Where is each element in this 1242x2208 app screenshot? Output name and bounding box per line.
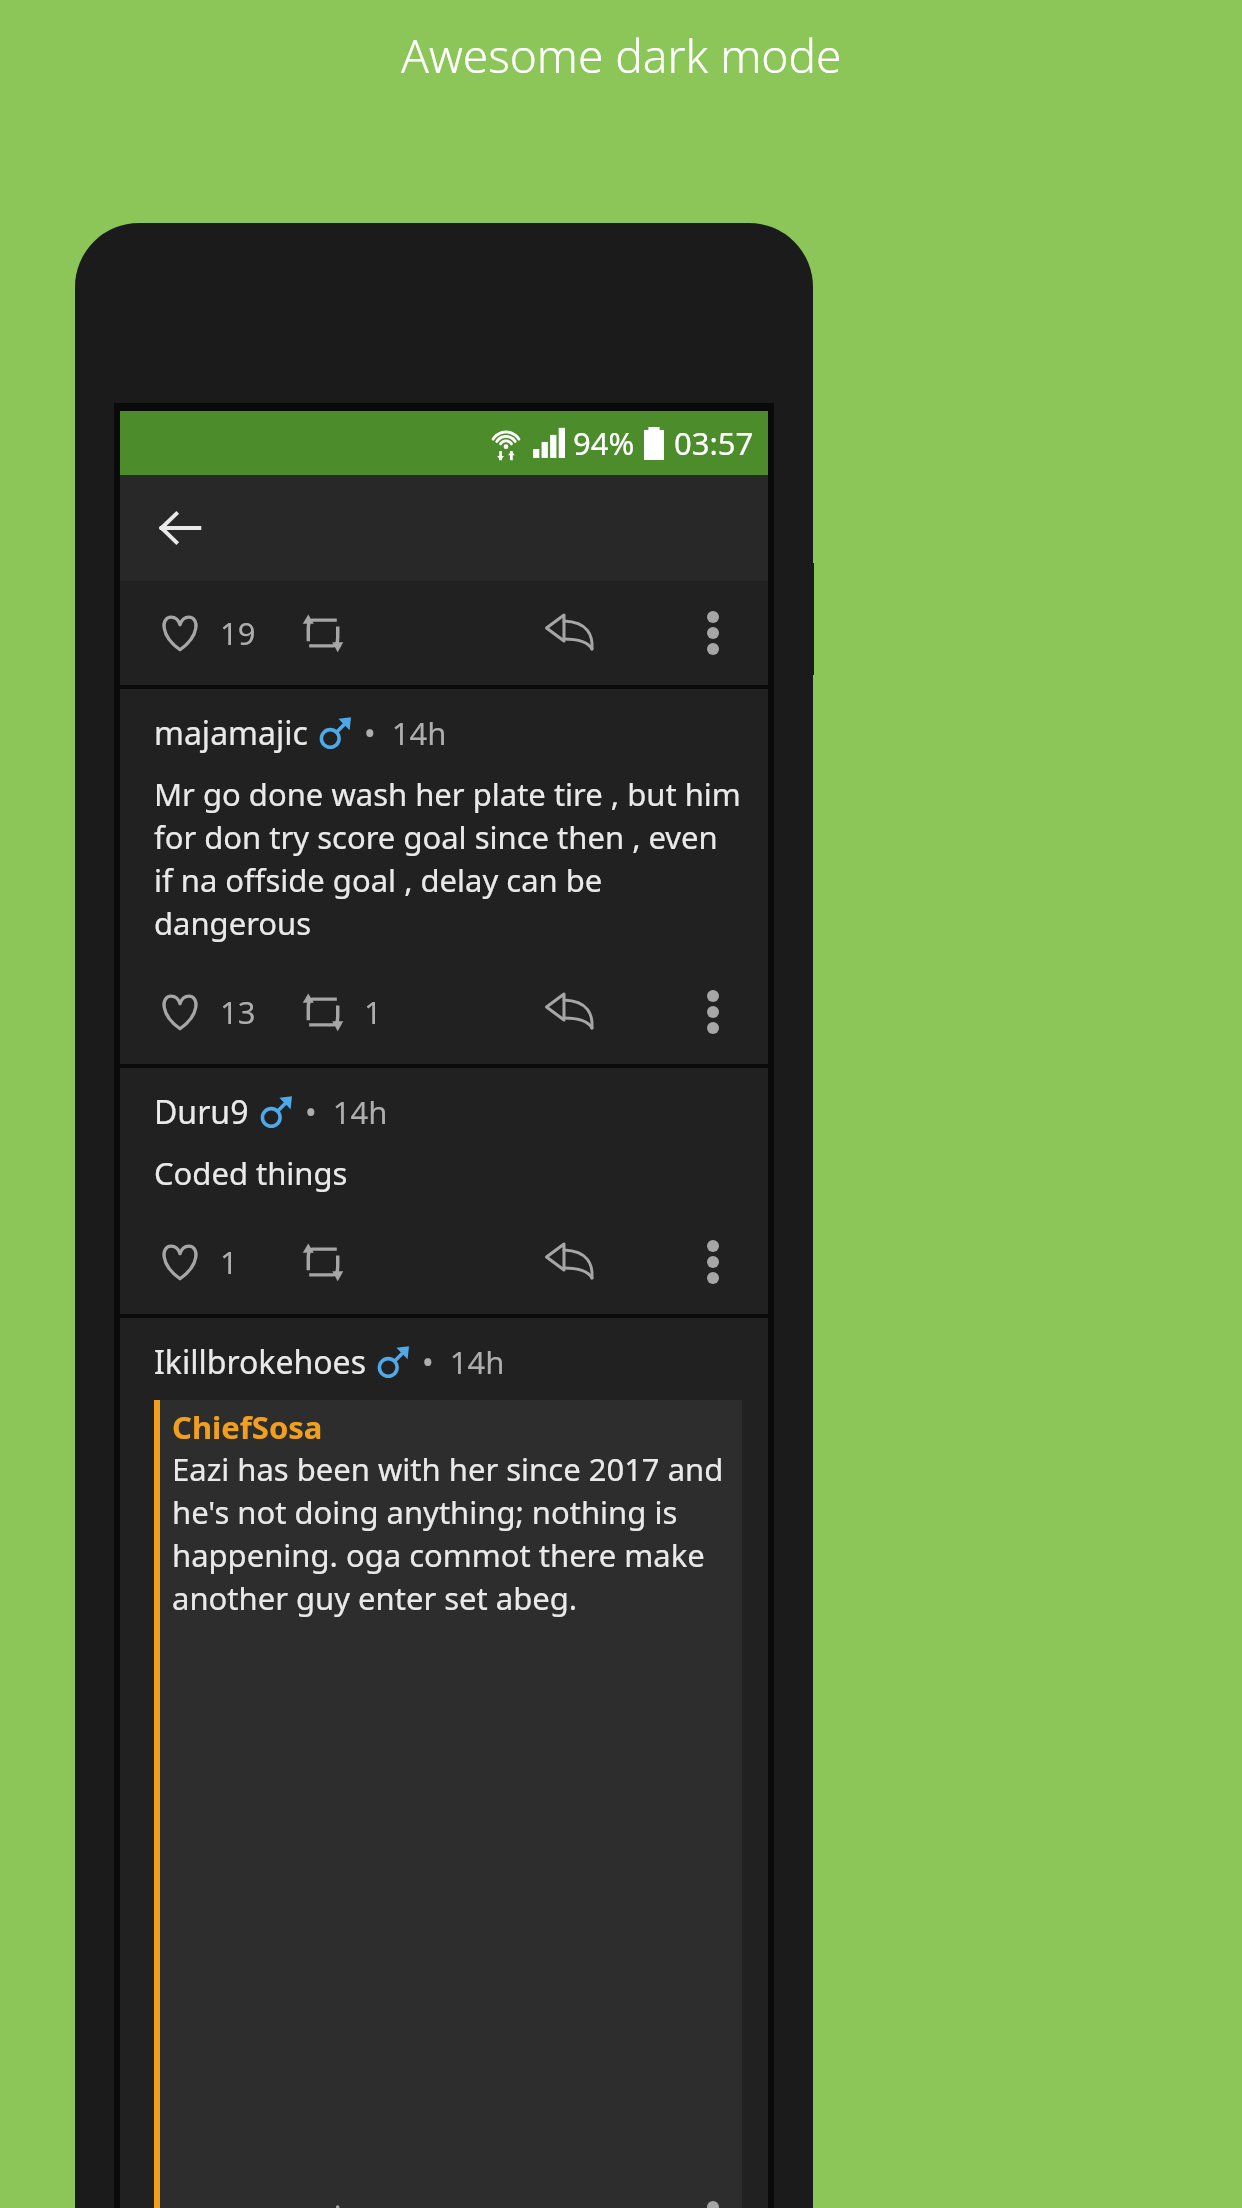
staticText: 94% xyxy=(573,422,635,464)
staticText: • 14h xyxy=(305,1091,388,1133)
button[interactable]: More options xyxy=(658,1210,768,1314)
button[interactable]: More options xyxy=(658,960,768,1064)
button[interactable]: 13 xyxy=(120,960,300,1064)
staticText: ChiefSosa xyxy=(172,1406,323,1448)
staticText: Eazi has been with her since 2017 and he… xyxy=(172,1448,734,1619)
button[interactable]: 1 xyxy=(300,960,479,1064)
staticText: Ikillbrokehoes xyxy=(154,1340,366,1384)
button[interactable]: 1 xyxy=(120,1210,300,1314)
button[interactable]: More options xyxy=(658,581,768,685)
staticText: 1 xyxy=(220,1241,238,1283)
button[interactable]: Reply xyxy=(479,1210,658,1314)
staticText: • 14h xyxy=(422,1341,505,1383)
button[interactable] xyxy=(300,581,479,685)
button[interactable]: Back xyxy=(144,492,216,564)
staticText: Duru9 xyxy=(154,1090,249,1134)
button[interactable]: 19 xyxy=(120,581,300,685)
staticText: Awesome dark mode xyxy=(401,24,842,87)
staticText: Mr go done wash her plate tire , but him… xyxy=(154,773,742,944)
staticText: 1 xyxy=(364,991,382,1033)
staticText: Coded things xyxy=(154,1152,348,1194)
button[interactable]: Reply xyxy=(479,960,658,1064)
staticText: majamajic xyxy=(154,711,308,755)
staticText: 19 xyxy=(220,612,256,654)
staticText: 13 xyxy=(220,991,256,1033)
staticText: • 14h xyxy=(364,712,447,754)
staticText: 03:57 xyxy=(674,422,754,464)
button[interactable]: Reply xyxy=(479,581,658,685)
button[interactable] xyxy=(300,1210,479,1314)
